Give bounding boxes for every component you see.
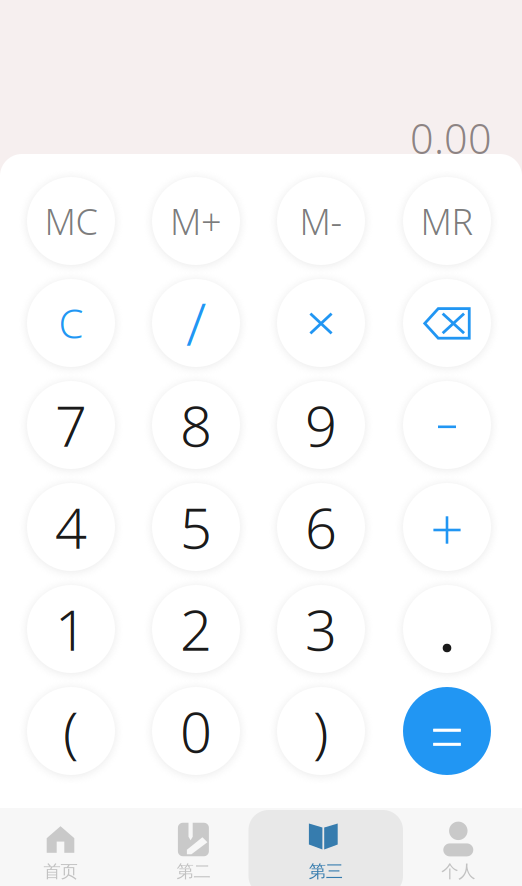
staticText: ) — [313, 694, 329, 768]
button[interactable]: / — [152, 279, 240, 367]
button[interactable]: 4 — [27, 483, 115, 571]
button[interactable]: M- — [277, 177, 365, 265]
staticText: MC — [44, 197, 97, 245]
staticText: 7 — [55, 388, 87, 462]
button[interactable]: MC — [27, 177, 115, 265]
button[interactable]: 个人 — [393, 808, 522, 886]
button[interactable]: 5 — [152, 483, 240, 571]
staticText: MR — [420, 197, 473, 245]
button[interactable] — [403, 483, 491, 571]
button[interactable]: C — [27, 279, 115, 367]
button[interactable]: 第二 — [128, 808, 258, 886]
button[interactable] — [277, 279, 365, 367]
staticText: ( — [63, 694, 79, 768]
staticText: 4 — [55, 490, 87, 564]
button[interactable]: 9 — [277, 381, 365, 469]
button[interactable]: ( — [27, 687, 115, 775]
button[interactable] — [403, 279, 491, 367]
button[interactable]: 首页 — [0, 808, 125, 886]
staticText: 首页 — [43, 861, 77, 882]
staticText: / — [186, 284, 206, 362]
button[interactable]: 0 — [152, 687, 240, 775]
button[interactable]: 6 — [277, 483, 365, 571]
staticText: 5 — [180, 490, 212, 564]
staticText: 第三 — [309, 861, 343, 882]
staticText: 0.00 — [410, 111, 492, 165]
staticText: 2 — [180, 592, 212, 666]
staticText: 1 — [55, 592, 87, 666]
button[interactable]: M+ — [152, 177, 240, 265]
staticText: 9 — [305, 388, 337, 462]
button[interactable]: 7 — [27, 381, 115, 469]
staticText: 6 — [305, 490, 337, 564]
staticText: 3 — [305, 592, 337, 666]
staticText: M- — [299, 197, 342, 245]
button[interactable]: 第三 — [261, 808, 391, 886]
button[interactable] — [403, 381, 491, 469]
staticText: 个人 — [441, 861, 475, 882]
staticText: M+ — [170, 197, 222, 245]
button[interactable]: 2 — [152, 585, 240, 673]
button[interactable] — [403, 687, 491, 775]
button[interactable]: 8 — [152, 381, 240, 469]
button[interactable]: 1 — [27, 585, 115, 673]
staticText: 第二 — [176, 861, 210, 882]
button[interactable]: ) — [277, 687, 365, 775]
staticText: C — [58, 296, 83, 349]
staticText: 0 — [180, 694, 212, 768]
button[interactable]: 3 — [277, 585, 365, 673]
staticText: 8 — [180, 388, 212, 462]
button[interactable]: MR — [403, 177, 491, 265]
button[interactable] — [403, 585, 491, 673]
